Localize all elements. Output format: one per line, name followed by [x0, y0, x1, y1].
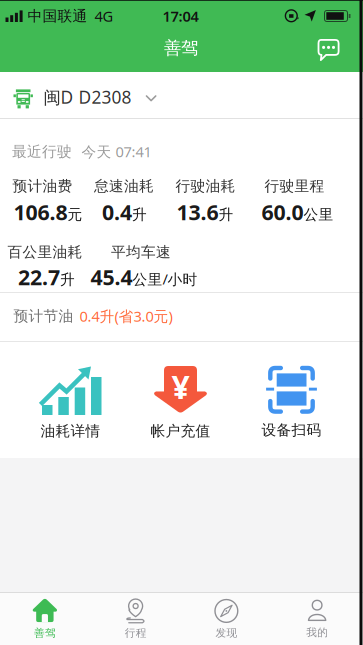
staticText: 行驶油耗 [175, 177, 235, 195]
staticText: 元 [67, 206, 82, 224]
staticText: 我的 [306, 626, 328, 639]
staticText: 百公里油耗 [7, 243, 82, 261]
staticText: 13.6 [176, 198, 218, 226]
staticText: 善驾 [34, 626, 56, 639]
staticText: 善驾 [164, 37, 198, 59]
button[interactable]: 发现 [181, 593, 272, 645]
staticText: 45.4 [90, 263, 132, 291]
staticText: 22.7 [18, 263, 60, 291]
button[interactable]: 闽D D2308 [0, 72, 363, 118]
staticText: 4G [94, 6, 113, 26]
staticText: 公里 [303, 206, 333, 224]
button[interactable]: 油耗详情 [17, 357, 123, 449]
staticText: ¥ [171, 365, 189, 408]
button[interactable]: 消息 [307, 30, 349, 70]
staticText: 17:04 [162, 6, 198, 26]
staticText: 帐户充值 [150, 422, 210, 440]
staticText: 行驶里程 [264, 177, 324, 195]
staticText: 闽D D2308 [43, 85, 131, 108]
button[interactable]: 我的 [272, 593, 363, 645]
staticText: 行程 [125, 626, 147, 639]
staticText: 怠速油耗 [94, 177, 154, 195]
staticText: 106.8 [13, 198, 67, 226]
staticText: 升 [60, 271, 75, 289]
staticText: 最近行驶 [12, 142, 72, 160]
staticText: 发现 [215, 626, 237, 639]
staticText: 平均车速 [111, 243, 171, 261]
staticText: 0.4升(省3.0元) [79, 306, 172, 326]
staticText: 预计节油 [13, 307, 73, 325]
staticText: 设备扫码 [261, 421, 321, 439]
staticText: 预计油费 [12, 177, 72, 195]
staticText: 升 [218, 206, 233, 224]
staticText: 60.0 [261, 198, 303, 226]
button[interactable]: ¥ [127, 357, 233, 449]
staticText: 0.4 [102, 198, 132, 226]
button[interactable]: 善驾 [0, 593, 90, 645]
button[interactable]: 设备扫码 [238, 357, 344, 449]
staticText: 公里/小时 [132, 269, 197, 289]
staticText: 油耗详情 [40, 422, 100, 440]
staticText: 升 [132, 206, 147, 224]
staticText: 中国联通 [27, 7, 87, 25]
button[interactable]: 行程 [90, 593, 181, 645]
staticText: 今天 07:41 [81, 142, 151, 161]
